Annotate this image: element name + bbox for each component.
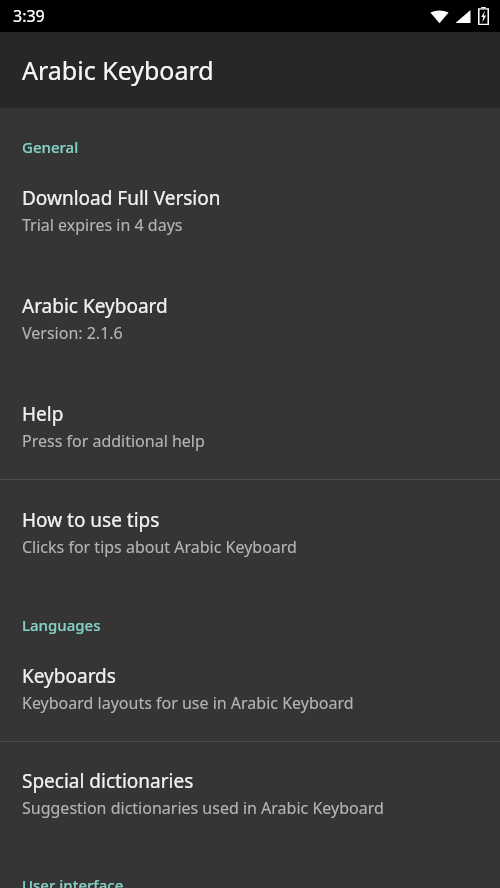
staticText: Version: 2.1.6 (22, 322, 123, 344)
staticText: 3:39 (13, 5, 45, 27)
staticText: Help (22, 401, 64, 427)
button[interactable]: How to use tips (0, 480, 500, 558)
staticText: Trial expires in 4 days (22, 214, 183, 236)
staticText: How to use tips (22, 507, 160, 533)
button[interactable]: Special dictionaries (0, 742, 500, 819)
button[interactable]: Keyboards (0, 635, 500, 741)
staticText: Clicks for tips about Arabic Keyboard (22, 536, 297, 558)
staticText: Special dictionaries (22, 768, 194, 794)
staticText: General (22, 137, 500, 157)
button[interactable]: Arabic Keyboard (0, 236, 500, 344)
staticText: Press for additional help (22, 430, 205, 452)
staticText: Languages (22, 615, 500, 635)
staticText: Keyboard layouts for use in Arabic Keybo… (22, 692, 354, 714)
staticText: Download Full Version (22, 185, 221, 211)
staticText: User interface (22, 875, 500, 888)
staticText: Suggestion dictionaries used in Arabic K… (22, 797, 384, 819)
button[interactable]: Help (0, 344, 500, 479)
staticText: Keyboards (22, 663, 116, 689)
staticText: Arabic Keyboard (22, 53, 214, 87)
staticText: Arabic Keyboard (22, 293, 168, 319)
button[interactable]: Download Full Version (0, 157, 500, 236)
